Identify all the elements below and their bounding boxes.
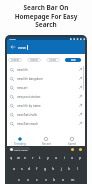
button[interactable]: new post station	[7, 92, 85, 101]
button[interactable]: new life by name	[7, 101, 85, 110]
button[interactable]: Trending	[7, 133, 33, 146]
button[interactable]: new flats halls	[7, 110, 85, 119]
button[interactable]: c	[32, 174, 41, 184]
button[interactable]: b	[50, 174, 59, 184]
staticText: v	[45, 177, 47, 182]
other: Insert query	[79, 68, 82, 71]
staticText: x	[27, 177, 29, 182]
staticText: new post station	[17, 95, 41, 99]
staticText: c	[36, 177, 38, 182]
staticText: Search Bar On Homepage For Easy Search	[0, 3, 92, 28]
button[interactable]: n	[59, 174, 68, 184]
staticText: new life bangalore	[17, 77, 44, 81]
other: Insert query	[79, 95, 82, 98]
button[interactable]: i	[60, 152, 68, 163]
button[interactable]: y	[44, 152, 52, 163]
button[interactable]: r	[29, 152, 36, 163]
button[interactable]: z	[15, 174, 23, 184]
button[interactable]: Recent	[33, 133, 59, 146]
staticText: Hotels	[30, 58, 38, 62]
button[interactable]: f	[33, 163, 41, 174]
staticText: w	[17, 155, 20, 160]
button[interactable]: e	[22, 152, 29, 163]
other: Insert query	[79, 113, 82, 116]
button[interactable]: d	[25, 163, 33, 174]
button[interactable]: comp. jokes	[9, 147, 30, 151]
staticText: Recent	[42, 142, 51, 146]
staticText: u	[55, 155, 58, 160]
button[interactable]: u	[52, 152, 60, 163]
staticText: d	[28, 166, 31, 171]
staticText: new	[18, 45, 26, 50]
staticText: n	[62, 177, 65, 182]
button[interactable]: new life bangalore	[7, 74, 85, 83]
button[interactable]: Trains	[46, 58, 60, 62]
staticText: Bus	[71, 58, 76, 62]
staticText: z	[18, 177, 20, 182]
staticText: b	[53, 177, 56, 182]
staticText: a	[13, 166, 16, 171]
button[interactable]: Bus	[65, 58, 81, 62]
button[interactable]: new art	[7, 83, 85, 92]
staticText: l	[77, 166, 78, 171]
staticText: r	[32, 155, 34, 160]
staticText: comp. jokes	[14, 148, 28, 151]
button[interactable]: o	[68, 152, 76, 163]
staticText: g	[44, 166, 47, 171]
staticText: i	[64, 155, 65, 160]
button[interactable]: h	[49, 163, 57, 174]
staticText: Trains	[49, 58, 57, 62]
staticText: new life	[17, 68, 28, 72]
staticText: o	[71, 155, 74, 160]
button[interactable]: Flights	[8, 58, 22, 62]
button[interactable]: p	[76, 152, 84, 163]
button[interactable]: x	[23, 174, 32, 184]
staticText: new flats halls	[17, 113, 37, 117]
staticText: y	[47, 155, 49, 160]
staticText: e	[24, 155, 27, 160]
button[interactable]: a	[11, 163, 18, 174]
staticText: new flats wash	[17, 122, 38, 126]
button[interactable]: w	[15, 152, 22, 163]
staticText: Saved	[68, 142, 76, 146]
button[interactable]: v	[41, 174, 50, 184]
button[interactable]: j	[57, 163, 65, 174]
button[interactable]: new flats wash	[7, 119, 85, 128]
other: Insert query	[79, 86, 82, 89]
button[interactable]: l	[73, 163, 81, 174]
button[interactable]: new life	[7, 65, 85, 74]
button[interactable]: s	[18, 163, 25, 174]
other: Insert query	[79, 104, 82, 107]
staticText: new art	[17, 86, 28, 90]
staticText: h	[52, 166, 55, 171]
other: Insert query	[79, 122, 82, 125]
staticText: f	[36, 166, 38, 171]
button[interactable]: Back	[7, 40, 85, 54]
staticText: Flights	[11, 58, 20, 62]
button[interactable]: Hotels	[27, 58, 41, 62]
staticText: Trending	[14, 142, 26, 146]
staticText: k	[68, 166, 70, 171]
staticText: t	[39, 155, 41, 160]
button[interactable]: Saved	[59, 133, 85, 146]
button[interactable]: m	[68, 174, 77, 184]
button[interactable]: q	[8, 152, 15, 163]
staticText: s	[21, 166, 23, 171]
other: Insert query	[79, 77, 82, 80]
staticText: new life by name	[17, 104, 41, 108]
staticText: p	[79, 155, 82, 160]
staticText: j	[61, 166, 62, 171]
other: Back	[11, 45, 15, 49]
button[interactable]: k	[65, 163, 73, 174]
staticText: q	[10, 155, 13, 160]
button[interactable]: g	[41, 163, 49, 174]
staticText: 10:30	[9, 37, 16, 40]
staticText: m	[71, 177, 75, 182]
button[interactable]: t	[36, 152, 44, 163]
